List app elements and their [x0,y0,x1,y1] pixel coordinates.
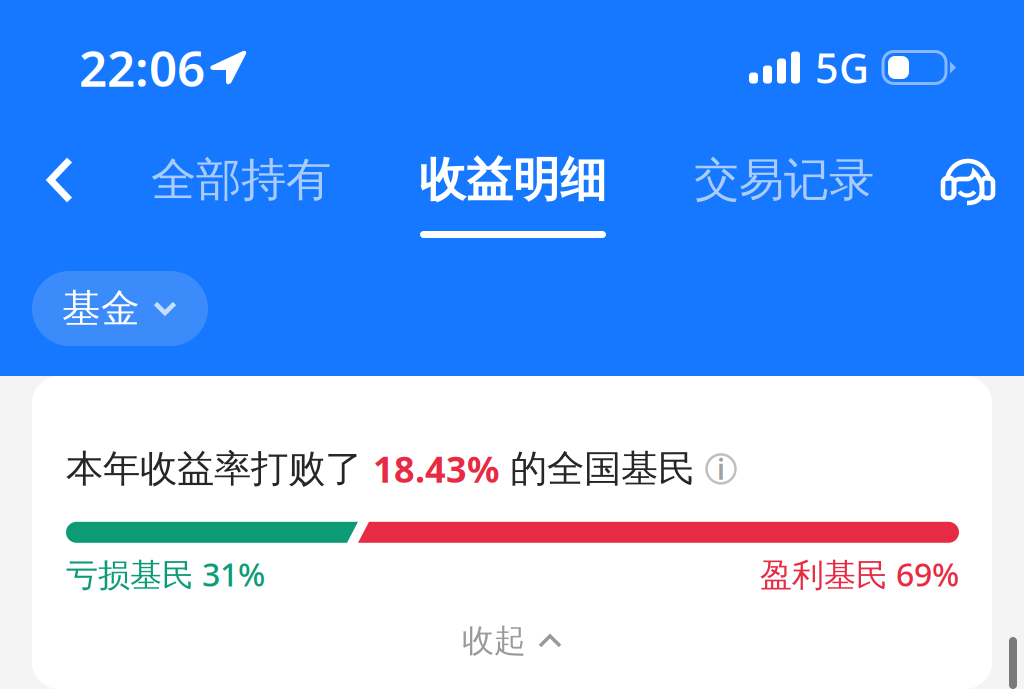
staticText: 盈利基民 69% [760,553,959,595]
button[interactable]: 交易记录 [694,135,874,225]
button[interactable]: 全部持有 [151,135,331,225]
staticText: i [717,450,725,487]
staticText: 全部持有 [151,152,331,208]
button[interactable]: 收起 [32,595,992,689]
staticText: 亏损基民 31% [66,553,265,595]
staticText: 5G [815,40,869,95]
staticText: 收起 [462,621,526,661]
staticText: 22:06 [79,35,205,100]
button[interactable]: 基金 [32,271,208,346]
staticText: 本年收益率打败了 [66,446,373,492]
staticText: 18.43% [373,445,499,493]
button[interactable]: 收益明细 [419,135,607,225]
button[interactable]: Customer service [940,135,996,225]
staticText: 收益明细 [419,151,607,209]
staticText: 基金 [62,285,140,332]
staticText: 的全国基民 [499,446,706,492]
staticText: 交易记录 [694,152,874,208]
button[interactable]: Back [33,135,87,225]
